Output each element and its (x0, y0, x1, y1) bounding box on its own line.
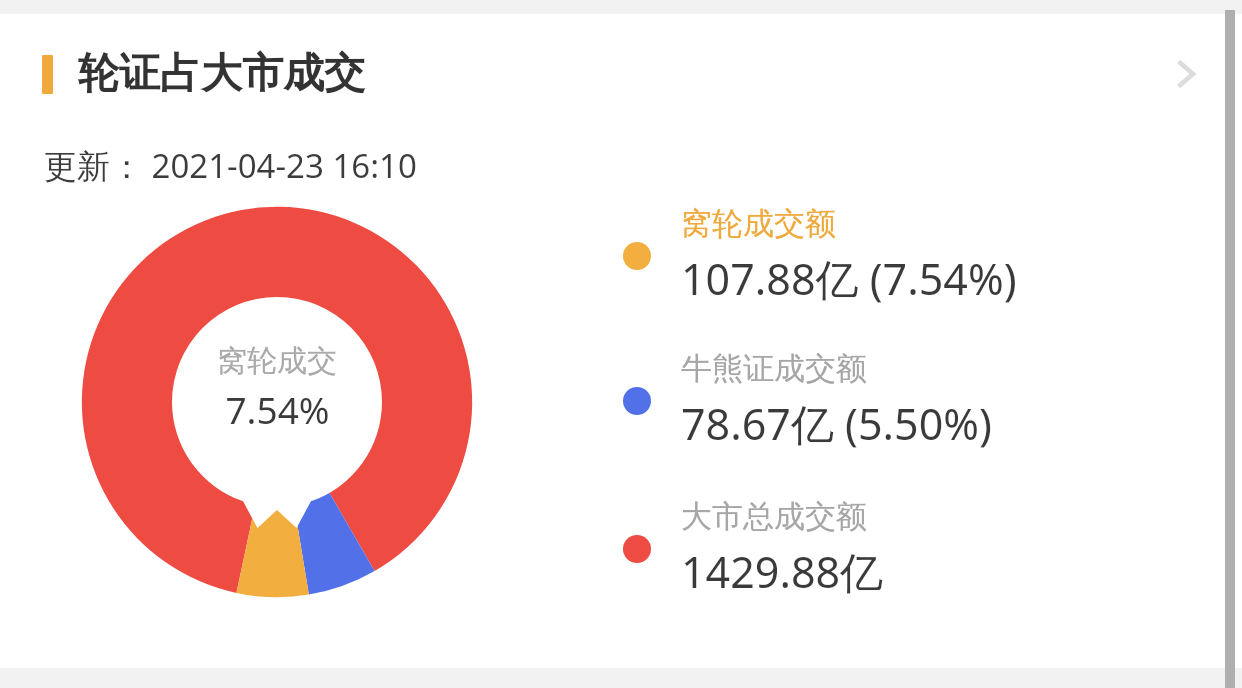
staticText: 窝轮成交额 (681, 204, 836, 243)
staticText: 7.54% (225, 384, 330, 434)
staticText: 轮证占大市成交 (78, 48, 365, 100)
staticText: 107.88亿 (7.54%) (681, 249, 1017, 308)
staticText: 牛熊证成交额 (681, 349, 867, 388)
button[interactable]: 牛熊证成交额 (600, 341, 1200, 461)
button[interactable]: 窝轮成交额 (600, 196, 1200, 316)
button[interactable]: 窝轮成交 (72, 197, 482, 607)
button[interactable]: 大市总成交额 (600, 489, 1200, 609)
staticText: 窝轮成交 (217, 342, 337, 380)
button[interactable]: 轮证占大市成交 (0, 24, 1242, 124)
staticText: 更新： 2021-04-23 16:10 (44, 143, 417, 188)
staticText: 1429.88亿 (681, 542, 884, 601)
staticText: 78.67亿 (5.50%) (681, 394, 992, 453)
staticText: 大市总成交额 (681, 497, 867, 536)
button[interactable]: 查看详情 (1146, 35, 1224, 113)
